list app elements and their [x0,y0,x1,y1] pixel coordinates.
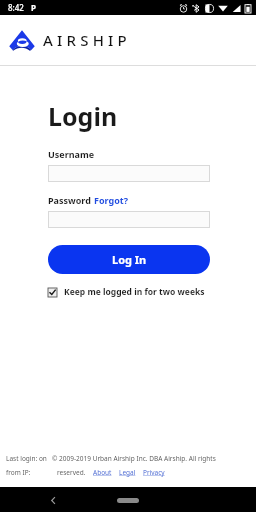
button[interactable]: Home [111,489,145,511]
staticText: Username [48,148,95,160]
staticText: © 2009-2019 Urban Airship Inc. DBA Airsh… [52,454,216,463]
staticText: Password [48,194,94,206]
button[interactable]: About [93,468,112,477]
staticText: Forgot? [94,194,129,206]
staticText: About [93,468,112,477]
button[interactable]: Keep me logged in [48,286,205,298]
staticText: P [31,2,36,13]
staticText: Privacy [143,468,165,477]
staticText: Log In [112,252,147,267]
staticText: Keep me logged in for two weeks [64,286,205,298]
button[interactable] [48,211,210,228]
staticText: Login [48,99,118,133]
button[interactable]: Back [44,491,62,509]
button[interactable]: Privacy [143,468,165,477]
staticText: AIRSHIP [43,30,131,50]
staticText: reserved. [57,468,86,477]
staticText: Legal [119,468,136,477]
button[interactable] [48,165,210,182]
staticText: Last login: on [6,454,47,463]
button[interactable]: Legal [119,468,136,477]
button[interactable]: Log In [48,245,210,274]
staticText: 8:42 [8,2,24,13]
button[interactable]: Forgot? [94,194,129,206]
other: Keep me logged in [48,288,57,297]
staticText: from IP: [6,468,31,477]
